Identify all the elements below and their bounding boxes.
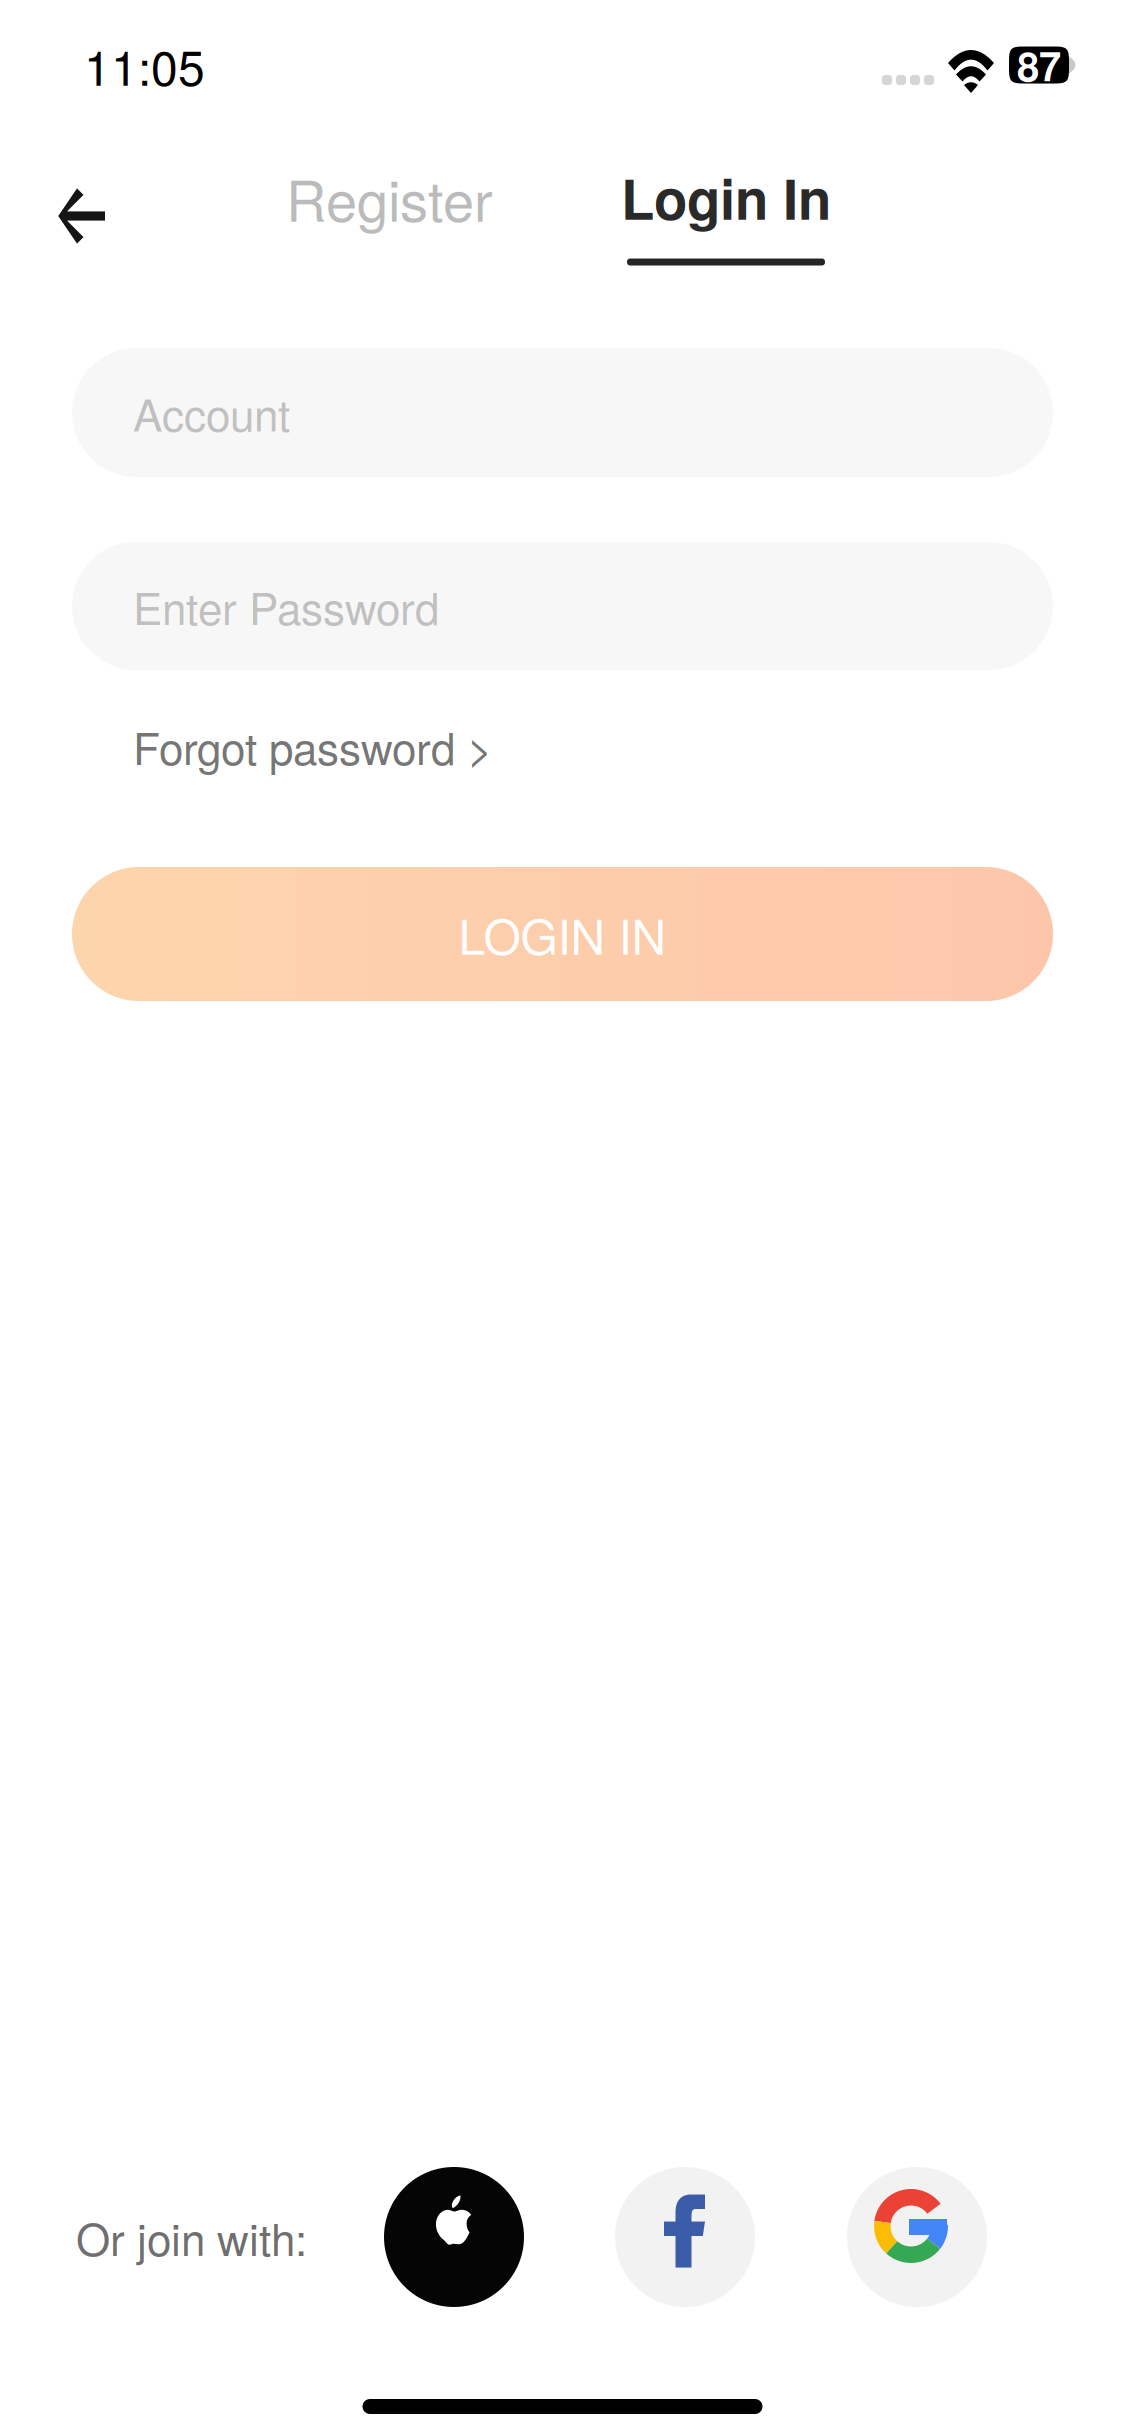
staticText: Register — [286, 157, 493, 238]
button[interactable]: Back — [34, 157, 130, 275]
staticText: Login In — [621, 158, 831, 237]
button[interactable]: Continue with Facebook — [615, 2167, 755, 2307]
button[interactable]: Forgot password > — [131, 708, 495, 784]
staticText: Or join with: — [76, 2205, 307, 2268]
staticText: Forgot password > — [133, 714, 493, 777]
staticText: Account — [133, 381, 290, 444]
staticText: LOGIN IN — [458, 900, 666, 968]
button[interactable]: Continue with Apple — [384, 2167, 524, 2307]
button[interactable]: Login In — [621, 157, 831, 275]
staticText: Enter Password — [133, 574, 439, 637]
staticText: 87 — [1017, 36, 1061, 94]
staticText: 11:05 — [84, 31, 205, 99]
button[interactable]: Continue with Google — [847, 2167, 987, 2307]
button[interactable]: LOGIN IN — [72, 867, 1053, 1001]
button[interactable]: Register — [286, 157, 493, 275]
